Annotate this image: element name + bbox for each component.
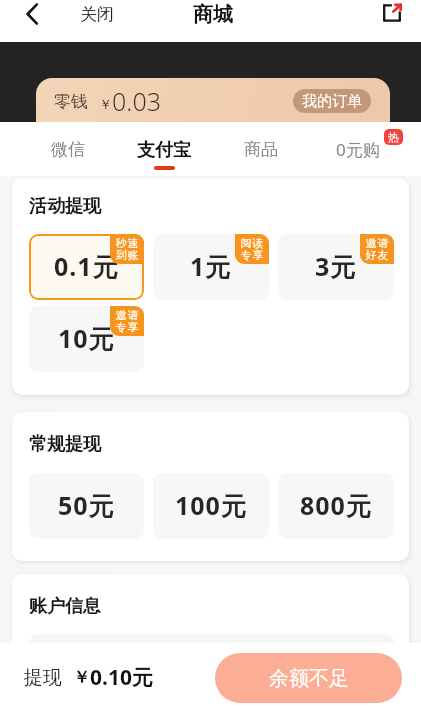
button[interactable]: 微信 — [20, 122, 116, 176]
button[interactable]: 0元购 — [309, 122, 406, 176]
staticText: 秒速 到账 — [115, 236, 139, 262]
staticText: 零钱 — [54, 91, 88, 112]
staticText: 商品 — [244, 139, 278, 160]
staticText: 提现 — [24, 666, 62, 690]
button[interactable]: Share — [375, 0, 409, 30]
button[interactable]: 800元 — [278, 473, 394, 539]
staticText: 0.03 — [112, 84, 161, 118]
staticText: ￥ — [99, 96, 112, 112]
button[interactable]: 关闭 — [80, 4, 114, 25]
staticText: 微信 — [51, 139, 85, 160]
staticText: 0元购 — [336, 138, 380, 161]
button[interactable]: 3元 — [278, 234, 394, 300]
staticText: 活动提现 — [29, 195, 101, 218]
staticText: 邀请 好友 — [365, 236, 389, 262]
staticText: 账户信息 — [29, 595, 101, 618]
staticText: 800元 — [300, 488, 372, 522]
button[interactable]: 50元 — [29, 473, 144, 539]
staticText: 我的订单 — [302, 92, 362, 111]
button[interactable]: Back — [14, 0, 52, 33]
staticText: 支付宝 — [137, 139, 191, 162]
staticText: 常规提现 — [29, 433, 101, 456]
button[interactable]: 0.1元 — [29, 234, 144, 300]
staticText: 邀请 专享 — [115, 308, 139, 334]
staticText: 0.10元 — [90, 663, 153, 692]
button[interactable]: 10元 — [29, 306, 144, 372]
button[interactable]: 100元 — [153, 473, 269, 539]
staticText: ￥ — [73, 667, 90, 688]
staticText: 热 — [388, 130, 399, 144]
staticText: 100元 — [175, 488, 247, 522]
button[interactable]: 余额不足 — [215, 653, 402, 703]
button[interactable]: 我的订单 — [293, 89, 371, 113]
staticText: 1元 — [190, 249, 232, 283]
staticText: 50元 — [58, 488, 115, 522]
staticText: 商城 — [193, 2, 233, 27]
staticText: 3元 — [315, 249, 357, 283]
button[interactable]: 商品 — [212, 122, 309, 176]
staticText: 关闭 — [80, 4, 114, 25]
button[interactable]: 支付宝 — [116, 122, 212, 176]
staticText: 余额不足 — [269, 666, 349, 691]
staticText: 10元 — [58, 321, 115, 355]
staticText: 0.1元 — [54, 249, 119, 283]
staticText: 阅读 专享 — [240, 236, 264, 262]
button[interactable]: 1元 — [153, 234, 269, 300]
